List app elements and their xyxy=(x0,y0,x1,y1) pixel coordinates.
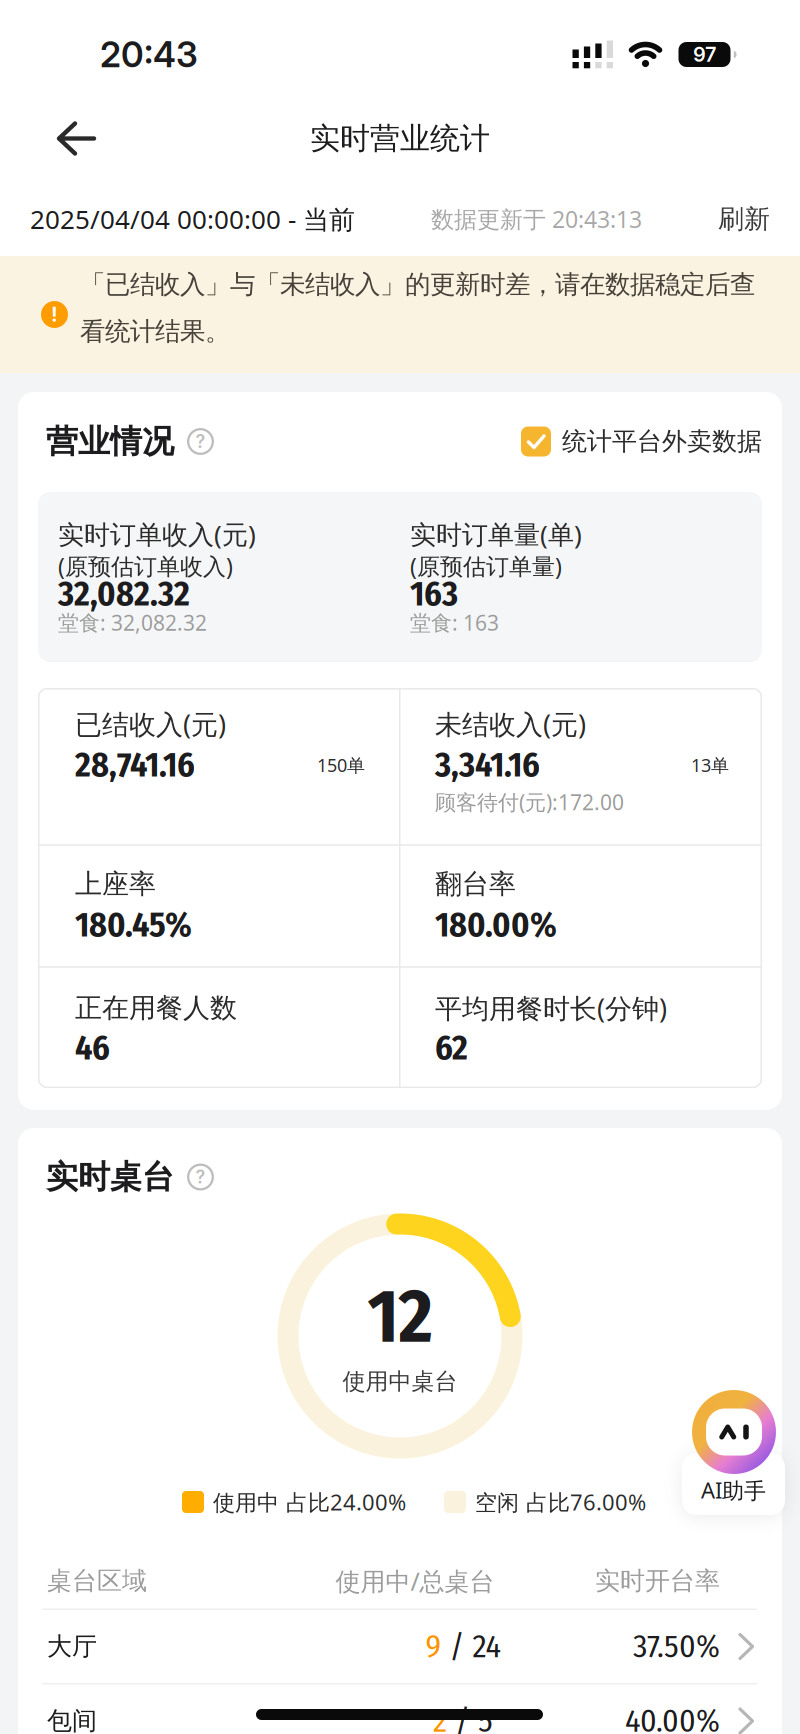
staticText: 包间 xyxy=(47,1705,97,1734)
staticText: 平均用餐时长(分钟) xyxy=(435,990,667,1026)
staticText: 32,082.32 xyxy=(58,574,190,614)
staticText: 营业情况 xyxy=(46,421,174,462)
staticText: 180.00% xyxy=(435,905,557,945)
staticText: 刷新 xyxy=(718,203,770,235)
staticText: 统计平台外卖数据 xyxy=(562,426,762,457)
staticText: 40.00% xyxy=(625,1702,720,1734)
staticText: 150单 xyxy=(317,753,365,777)
button[interactable]: 统计平台外卖数据 xyxy=(521,426,762,457)
staticText: 28,741.16 xyxy=(75,745,195,785)
staticText: (原预估订单量) xyxy=(410,550,562,582)
staticText: 堂食: 163 xyxy=(410,608,499,637)
staticText: 正在用餐人数 xyxy=(75,991,237,1025)
staticText: 3,341.16 xyxy=(435,745,540,785)
button[interactable]: 返回 xyxy=(0,99,95,178)
staticText: 使用中桌台 xyxy=(342,1367,457,1396)
button[interactable]: AI助手 xyxy=(682,1390,785,1515)
staticText: 顾客待付(元):172.00 xyxy=(435,788,624,816)
staticText: ? xyxy=(195,431,205,452)
button[interactable]: 帮助 xyxy=(187,1163,214,1190)
staticText: ! xyxy=(51,302,58,327)
staticText: 实时订单量(单) xyxy=(410,516,582,552)
button[interactable]: 大厅 xyxy=(18,1610,782,1683)
staticText: 20:43 xyxy=(100,33,198,76)
staticText: 桌台区域 xyxy=(47,1565,147,1597)
staticText: 37.50% xyxy=(633,1627,720,1666)
staticText: 实时订单收入(元) xyxy=(58,516,256,552)
staticText: 12 xyxy=(367,1273,432,1361)
staticText: 上座率 xyxy=(75,867,156,901)
button[interactable]: 包间 xyxy=(18,1684,782,1734)
staticText: 2025/04/04 00:00:00 - 当前 xyxy=(30,201,355,237)
staticText: 实时营业统计 xyxy=(310,120,490,157)
staticText: 180.45% xyxy=(75,905,192,945)
staticText: / 5 xyxy=(447,1702,493,1734)
button[interactable]: 刷新 xyxy=(718,203,770,235)
staticText: 堂食: 32,082.32 xyxy=(58,608,207,637)
staticText: 46 xyxy=(75,1028,110,1068)
staticText: 使用中/总桌台 xyxy=(335,1564,494,1598)
staticText: 9 xyxy=(425,1627,441,1666)
staticText: 163 xyxy=(410,574,458,614)
staticText: 2 xyxy=(433,1702,447,1734)
staticText: 翻台率 xyxy=(435,867,516,901)
staticText: (原预估订单收入) xyxy=(58,550,233,582)
staticText: 62 xyxy=(435,1028,468,1068)
staticText: ? xyxy=(195,1166,205,1188)
staticText: 实时桌台 xyxy=(46,1157,174,1197)
staticText: 未结收入(元) xyxy=(435,706,586,742)
staticText: 97 xyxy=(693,42,716,67)
staticText: 「已结收入」与「未结收入」的更新时差，请在数据稳定后查 看统计结果。 xyxy=(80,261,755,355)
staticText: AI助手 xyxy=(701,1475,766,1505)
staticText: 已结收入(元) xyxy=(75,706,226,742)
staticText: 数据更新于 20:43:13 xyxy=(431,203,642,235)
staticText: 空闲 占比76.00% xyxy=(475,1487,646,1517)
staticText: 13单 xyxy=(691,753,729,777)
staticText: 大厅 xyxy=(47,1631,97,1662)
button[interactable]: 帮助 xyxy=(187,428,214,455)
staticText: / 24 xyxy=(441,1627,500,1666)
staticText: 使用中 占比24.00% xyxy=(213,1487,406,1517)
staticText: 实时开台率 xyxy=(595,1565,720,1597)
